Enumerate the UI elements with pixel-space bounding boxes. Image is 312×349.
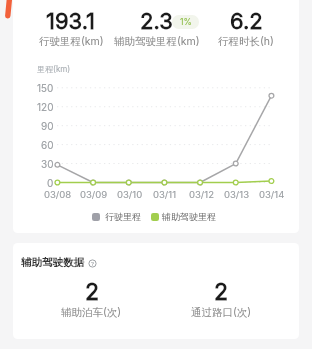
button[interactable]: 行驶里程 xyxy=(64,206,244,226)
staticText: 辅助泊车(次) xyxy=(61,306,122,319)
button[interactable]: 2 xyxy=(12,274,172,310)
staticText: 2 xyxy=(214,278,229,306)
button[interactable]: 2.3 xyxy=(76,3,236,39)
staticText: 193.1 xyxy=(46,8,96,35)
staticText: 03/09 xyxy=(80,189,108,200)
button[interactable]: 6.2 xyxy=(166,3,312,39)
staticText: 辅助驾驶里程(km) xyxy=(114,35,200,48)
staticText: 03/12 xyxy=(189,189,214,200)
staticText: 行程时长(h) xyxy=(218,35,274,48)
staticText: 6.2 xyxy=(230,8,263,35)
staticText: 行驶里程(km) xyxy=(39,35,104,48)
staticText: 150 xyxy=(37,82,54,94)
staticText: 2 xyxy=(85,278,100,306)
staticText: 0 xyxy=(47,177,54,189)
staticText: 60 xyxy=(41,139,54,151)
button[interactable]: ? xyxy=(86,257,99,270)
staticText: 03/14 xyxy=(259,189,285,200)
button[interactable]: 193.1 xyxy=(0,3,151,39)
button[interactable]: 2 xyxy=(141,274,301,310)
staticText: 2.3 xyxy=(140,8,173,35)
staticText: 通过路口(次) xyxy=(191,306,252,319)
staticText: 30 xyxy=(41,158,54,170)
staticText: 1% xyxy=(180,17,192,27)
staticText: 辅助驾驶数据 xyxy=(21,256,84,269)
staticText: 辅助驾驶里程 xyxy=(162,211,216,222)
staticText: 03/13 xyxy=(224,189,250,200)
staticText: 03/10 xyxy=(117,189,143,200)
staticText: 行驶里程 xyxy=(105,211,141,222)
staticText: ? xyxy=(91,260,95,267)
staticText: 03/11 xyxy=(153,189,177,200)
staticText: 90 xyxy=(41,120,54,132)
staticText: 03/08 xyxy=(44,189,72,200)
staticText: 里程(km) xyxy=(37,64,71,74)
staticText: 120 xyxy=(37,101,54,113)
